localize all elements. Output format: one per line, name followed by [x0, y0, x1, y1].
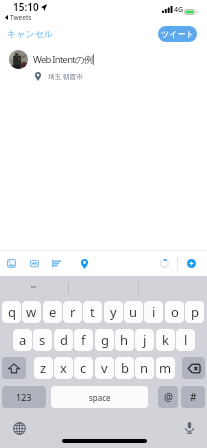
button[interactable]: m: [156, 357, 175, 379]
button[interactable]: 123: [2, 386, 46, 408]
staticText: m: [159, 359, 172, 377]
button[interactable]: n: [135, 357, 154, 379]
staticText: e: [49, 303, 57, 321]
staticText: p: [191, 303, 199, 321]
button[interactable]: Tweets: [5, 13, 32, 22]
staticText: k: [162, 331, 169, 349]
staticText: 4G: [174, 5, 184, 15]
staticText: i: [152, 303, 156, 321]
staticText: w: [26, 303, 37, 321]
button[interactable]: Add tweet: [187, 259, 196, 268]
staticText: b: [121, 359, 129, 377]
staticText: y: [110, 303, 117, 321]
staticText: 埼玉 朝霞市: [48, 72, 83, 81]
staticText: #: [190, 390, 197, 404]
button[interactable]: Change keyboard: [13, 422, 26, 435]
button[interactable]: Backspace: [182, 357, 205, 379]
button[interactable]: k: [156, 329, 175, 351]
staticText: 123: [16, 391, 32, 403]
button[interactable]: e: [43, 301, 62, 323]
staticText: t: [90, 303, 95, 321]
staticText: Web Intentの例: [33, 53, 93, 66]
button[interactable]: #: [181, 386, 205, 408]
staticText: space: [89, 392, 111, 403]
button[interactable]: キャンセル: [7, 28, 54, 39]
staticText: l: [184, 331, 188, 349]
button[interactable]: space: [51, 386, 148, 408]
button[interactable]: i: [144, 301, 163, 323]
staticText: v: [101, 359, 108, 377]
staticText: j: [143, 331, 147, 349]
button[interactable]: r: [63, 301, 82, 323]
staticText: x: [60, 359, 67, 377]
button[interactable]: Add GIF: [30, 259, 39, 268]
staticText: r: [70, 303, 76, 321]
button[interactable]: 埼玉 朝霞市: [35, 72, 83, 81]
button[interactable]: Poll: [52, 259, 61, 268]
staticText: ツイート: [161, 29, 194, 39]
button[interactable]: Profile photo: [9, 50, 28, 69]
button[interactable]: l: [176, 329, 195, 351]
staticText: z: [40, 359, 47, 377]
staticText: q: [8, 303, 16, 321]
button[interactable]: b: [115, 357, 134, 379]
button[interactable]: v: [95, 357, 114, 379]
button[interactable]: Dictate: [183, 421, 196, 434]
button[interactable]: Add photo: [7, 259, 16, 268]
button[interactable]: x: [54, 357, 73, 379]
button[interactable]: w: [22, 301, 41, 323]
button[interactable]: @: [158, 386, 178, 408]
staticText: h: [120, 331, 129, 349]
staticText: d: [60, 331, 68, 349]
staticText: u: [129, 303, 138, 321]
staticText: 15:10: [13, 0, 39, 14]
staticText: n: [140, 359, 149, 377]
staticText: Tweets: [10, 13, 32, 22]
button[interactable]: g: [95, 329, 114, 351]
staticText: キャンセル: [7, 28, 54, 39]
button[interactable]: a: [13, 329, 32, 351]
button[interactable]: c: [74, 357, 93, 379]
button[interactable]: j: [135, 329, 154, 351]
button[interactable]: q: [2, 301, 21, 323]
button[interactable]: Location: [81, 259, 88, 269]
staticText: c: [80, 359, 87, 377]
staticText: a: [19, 331, 27, 349]
staticText: g: [101, 331, 109, 349]
button[interactable]: ツイート: [158, 26, 197, 42]
staticText: f: [81, 331, 86, 349]
button[interactable]: u: [124, 301, 143, 323]
staticText: o: [171, 303, 179, 321]
staticText: s: [39, 331, 46, 349]
button[interactable]: Shift: [2, 357, 26, 379]
button[interactable]: t: [83, 301, 102, 323]
button[interactable]: s: [33, 329, 52, 351]
button[interactable]: f: [74, 329, 93, 351]
button[interactable]: d: [54, 329, 73, 351]
button[interactable]: y: [104, 301, 123, 323]
button[interactable]: h: [115, 329, 134, 351]
button[interactable]: z: [34, 357, 53, 379]
button[interactable]: p: [185, 301, 204, 323]
staticText: “”: [31, 284, 37, 294]
staticText: @: [164, 390, 173, 404]
button[interactable]: o: [165, 301, 184, 323]
